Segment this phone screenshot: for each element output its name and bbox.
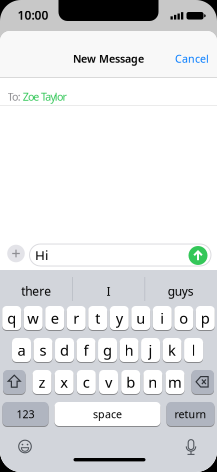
- button[interactable]: d: [55, 338, 74, 362]
- staticText: 123: [16, 407, 34, 421]
- button[interactable]: To:: [0, 83, 217, 109]
- button[interactable]: t: [88, 306, 107, 330]
- staticText: u: [136, 308, 145, 328]
- button[interactable]: r: [67, 306, 86, 330]
- button[interactable]: Dictate: [184, 439, 198, 455]
- button[interactable]: z: [32, 370, 51, 394]
- button[interactable]: Emoji: [18, 439, 32, 453]
- staticText: n: [148, 372, 157, 392]
- staticText: i: [160, 308, 164, 328]
- staticText: s: [39, 340, 46, 360]
- staticText: w: [27, 308, 39, 328]
- button[interactable]: k: [163, 338, 182, 362]
- button[interactable]: m: [165, 370, 184, 394]
- staticText: f: [83, 340, 88, 360]
- button[interactable]: j: [141, 338, 160, 362]
- staticText: a: [17, 340, 25, 360]
- staticText: m: [168, 372, 182, 392]
- button[interactable]: y: [110, 306, 129, 330]
- staticText: return: [174, 407, 206, 421]
- button[interactable]: l: [184, 338, 203, 362]
- button[interactable]: f: [76, 338, 95, 362]
- button[interactable]: n: [143, 370, 162, 394]
- button[interactable]: I: [73, 276, 143, 306]
- button[interactable]: Add: [7, 245, 25, 262]
- button[interactable]: a: [12, 338, 31, 362]
- button[interactable]: Delete: [191, 370, 214, 394]
- staticText: c: [83, 372, 90, 392]
- staticText: there: [21, 283, 51, 299]
- staticText: t: [95, 308, 100, 328]
- staticText: q: [7, 308, 16, 328]
- staticText: To:: [7, 89, 21, 104]
- button[interactable]: Shift: [3, 370, 25, 394]
- button[interactable]: there: [1, 276, 71, 306]
- button[interactable]: o: [174, 306, 193, 330]
- staticText: z: [38, 372, 45, 392]
- staticText: Cancel: [175, 51, 209, 66]
- staticText: v: [105, 372, 112, 392]
- staticText: k: [168, 340, 176, 360]
- button[interactable]: u: [131, 306, 150, 330]
- button[interactable]: p: [196, 306, 215, 330]
- button[interactable]: space: [54, 402, 160, 426]
- staticText: New Message: [73, 51, 144, 66]
- button[interactable]: g: [98, 338, 117, 362]
- staticText: d: [60, 340, 69, 360]
- staticText: l: [192, 340, 196, 360]
- button[interactable]: w: [24, 306, 43, 330]
- button[interactable]: i: [153, 306, 172, 330]
- button[interactable]: Send: [188, 246, 207, 265]
- staticText: guys: [168, 283, 194, 299]
- button[interactable]: x: [55, 370, 74, 394]
- button[interactable]: q: [2, 306, 21, 330]
- staticText: b: [126, 372, 135, 392]
- staticText: j: [149, 340, 153, 360]
- staticText: r: [73, 308, 79, 328]
- staticText: Hi: [35, 246, 48, 264]
- button[interactable]: v: [99, 370, 118, 394]
- button[interactable]: c: [77, 370, 96, 394]
- staticText: I: [106, 283, 110, 299]
- button[interactable]: Cancel: [175, 51, 209, 66]
- button[interactable]: guys: [146, 276, 216, 306]
- button[interactable]: e: [45, 306, 64, 330]
- staticText: y: [116, 308, 123, 328]
- button[interactable]: h: [120, 338, 139, 362]
- staticText: o: [179, 308, 188, 328]
- button[interactable]: s: [33, 338, 52, 362]
- staticText: Zoe Taylor: [23, 89, 66, 104]
- button[interactable]: return: [166, 402, 214, 426]
- staticText: h: [125, 340, 134, 360]
- button[interactable]: b: [121, 370, 140, 394]
- staticText: 10:00: [17, 7, 48, 23]
- button[interactable]: 123: [2, 402, 48, 426]
- staticText: x: [60, 372, 68, 392]
- staticText: space: [93, 407, 122, 421]
- staticText: g: [103, 340, 112, 360]
- staticText: e: [51, 308, 59, 328]
- staticText: p: [201, 308, 210, 328]
